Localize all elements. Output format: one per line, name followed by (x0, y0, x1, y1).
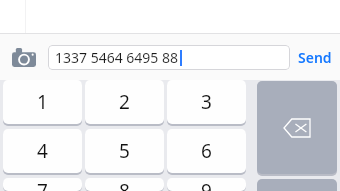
button[interactable]: 6 (167, 129, 246, 173)
button[interactable]: More (257, 179, 337, 191)
button[interactable]: Send (290, 34, 340, 80)
staticText: 3 (201, 89, 212, 115)
button[interactable]: 1 (3, 80, 82, 124)
staticText: 1337 5464 6495 88 (55, 48, 179, 67)
staticText: 2 (119, 89, 130, 115)
staticText: 8 (119, 178, 130, 191)
button[interactable]: 7 (3, 178, 82, 191)
button[interactable]: Take photo (0, 34, 48, 80)
button[interactable]: 8 (85, 178, 164, 191)
button[interactable]: 5 (85, 129, 164, 173)
staticText: 1 (37, 89, 48, 115)
button[interactable]: 4 (3, 129, 82, 173)
button[interactable]: 2 (85, 80, 164, 124)
button[interactable]: Backspace (257, 81, 337, 174)
staticText: Send (298, 48, 332, 67)
staticText: 4 (37, 138, 48, 164)
button[interactable]: 9 (167, 178, 246, 191)
staticText: 6 (201, 138, 212, 164)
staticText: 9 (201, 178, 212, 191)
button[interactable]: 1337 5464 6495 88 (48, 45, 290, 70)
button[interactable]: 3 (167, 80, 246, 124)
staticText: 5 (119, 138, 130, 164)
staticText: 7 (37, 178, 48, 191)
